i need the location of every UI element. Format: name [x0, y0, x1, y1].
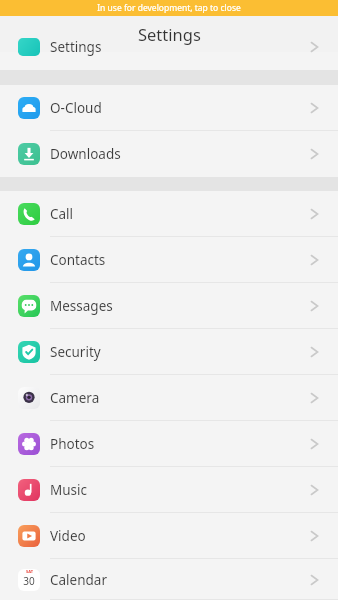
staticText: Call [50, 205, 74, 223]
button[interactable]: Settings [0, 52, 338, 70]
button[interactable]: Call [0, 191, 338, 237]
staticText: Camera [50, 389, 100, 407]
staticText: 30 [23, 574, 35, 588]
staticText: Video [50, 527, 86, 545]
button[interactable]: Contacts [0, 237, 338, 283]
button[interactable]: Messages [0, 283, 338, 329]
button[interactable]: Security [0, 329, 338, 375]
staticText: SAT [26, 569, 33, 574]
staticText: Messages [50, 297, 113, 315]
staticText: Downloads [50, 145, 121, 163]
button[interactable]: Camera [0, 375, 338, 421]
button[interactable]: SAT [0, 559, 338, 600]
staticText: Settings [50, 38, 102, 56]
button[interactable]: In use for development, tap to close [0, 0, 338, 16]
staticText: Settings [138, 23, 201, 45]
button[interactable]: Photos [0, 421, 338, 467]
button[interactable]: Downloads [0, 131, 338, 177]
staticText: Photos [50, 435, 95, 453]
button[interactable]: O-Cloud [0, 85, 338, 131]
staticText: Security [50, 343, 101, 361]
staticText: Music [50, 481, 88, 499]
button[interactable]: Video [0, 513, 338, 559]
staticText: Calendar [50, 571, 107, 589]
staticText: Contacts [50, 251, 106, 269]
button[interactable]: Music [0, 467, 338, 513]
staticText: In use for development, tap to close [97, 2, 241, 14]
staticText: O-Cloud [50, 99, 102, 117]
